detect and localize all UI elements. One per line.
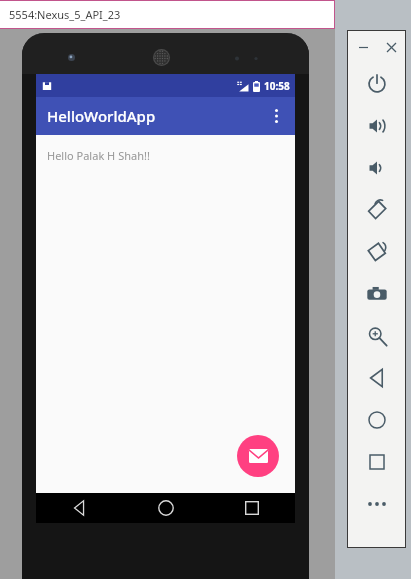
button[interactable]: Back bbox=[355, 357, 399, 399]
staticText: HelloWorldApp bbox=[47, 106, 156, 126]
button[interactable]: Home bbox=[355, 399, 399, 441]
button[interactable]: Zoom bbox=[355, 315, 399, 357]
button[interactable]: Rotate left bbox=[355, 189, 399, 231]
button[interactable]: Volume up bbox=[355, 105, 399, 147]
staticText: Hello Palak H Shah!! bbox=[47, 148, 150, 163]
button[interactable]: Home bbox=[123, 493, 209, 523]
button[interactable]: Close bbox=[379, 35, 403, 59]
button[interactable]: Send email bbox=[237, 435, 279, 477]
button[interactable]: Screenshot bbox=[355, 273, 399, 315]
button[interactable]: Rotate right bbox=[355, 231, 399, 273]
button[interactable]: Power bbox=[355, 63, 399, 105]
staticText: 5554:Nexus_5_API_23 bbox=[9, 7, 121, 22]
button[interactable]: More bbox=[355, 483, 399, 525]
button[interactable]: Minimize bbox=[351, 35, 375, 59]
button[interactable]: More options bbox=[257, 97, 295, 135]
button[interactable]: Back bbox=[36, 493, 123, 523]
button[interactable]: Recents bbox=[355, 441, 399, 483]
button[interactable]: Recents bbox=[209, 493, 295, 523]
button[interactable]: Volume down bbox=[355, 147, 399, 189]
staticText: 10:58 bbox=[264, 79, 290, 93]
